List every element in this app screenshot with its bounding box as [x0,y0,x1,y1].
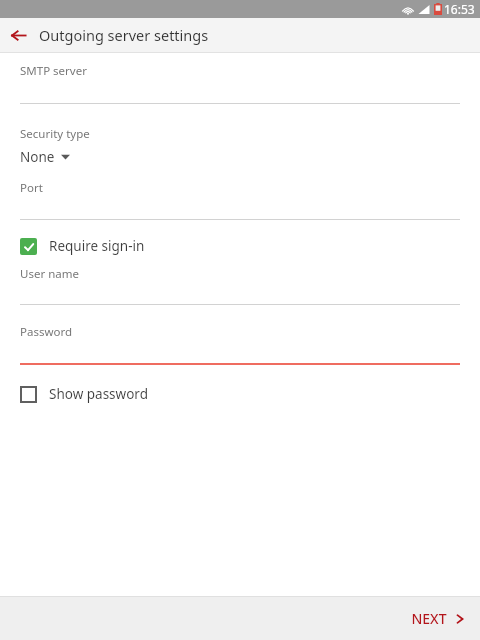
button[interactable]: NEXT [395,599,480,638]
staticText: 16:53 [444,1,475,17]
staticText: Port [20,180,43,196]
staticText: None [20,148,55,166]
button[interactable]: Show password [20,385,460,403]
staticText: Show password [49,385,148,403]
button[interactable]: Navigate up [0,18,36,52]
button[interactable]: Require sign-in [20,237,460,255]
staticText: Security type [20,126,90,142]
staticText: Outgoing server settings [39,25,209,45]
staticText: Require sign-in [49,237,145,255]
staticText: Password [20,324,73,340]
staticText: SMTP server [20,63,87,79]
staticText: NEXT [411,609,447,628]
staticText: User name [20,266,79,282]
button[interactable]: None [20,148,70,166]
